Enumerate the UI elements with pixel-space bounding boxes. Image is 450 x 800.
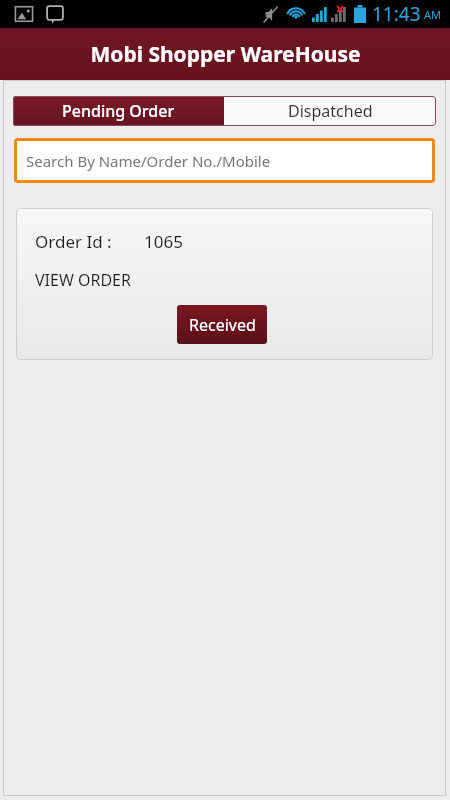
staticText: AM xyxy=(424,7,442,22)
button[interactable]: Search By Name/Order No./Mobile xyxy=(14,138,435,183)
staticText: Mobi Shopper WareHouse xyxy=(90,40,361,69)
staticText: Pending Order xyxy=(62,100,175,122)
button[interactable]: Pending Order xyxy=(13,96,224,126)
staticText: Received xyxy=(189,314,256,336)
staticText: 11:43 xyxy=(372,1,421,27)
staticText: 1065 xyxy=(144,230,183,253)
button[interactable]: VIEW ORDER xyxy=(35,269,131,291)
staticText: Search By Name/Order No./Mobile xyxy=(26,151,271,171)
staticText: Order Id : xyxy=(35,230,112,253)
button[interactable]: Order Id : xyxy=(16,208,433,360)
button[interactable]: Received xyxy=(177,305,267,344)
staticText: Dispatched xyxy=(288,100,373,122)
button[interactable]: Dispatched xyxy=(224,96,436,126)
